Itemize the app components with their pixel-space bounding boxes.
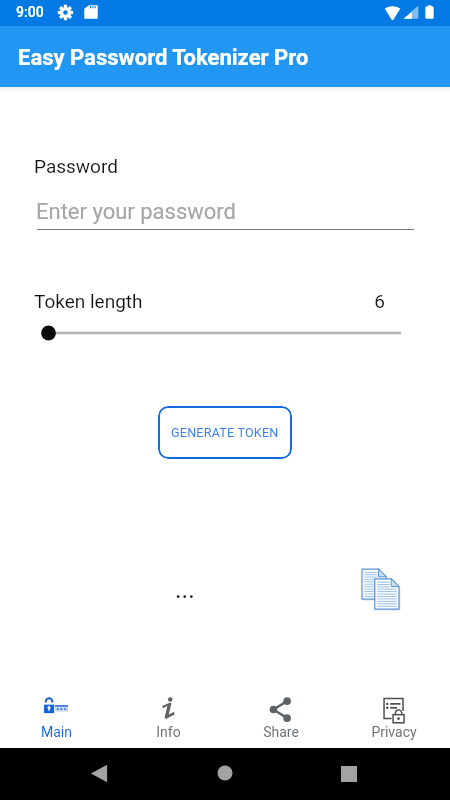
staticText: Privacy: [371, 724, 417, 740]
staticText: Password: [34, 155, 118, 177]
staticText: 6: [374, 290, 385, 312]
other: Back: [90, 764, 108, 783]
staticText: ...: [175, 575, 195, 604]
staticText: Easy Password Tokenizer Pro: [18, 45, 309, 71]
button[interactable]: Info: [112, 680, 224, 748]
button[interactable]: GENERATE TOKEN: [158, 406, 292, 459]
staticText: Token length: [34, 290, 143, 312]
button[interactable]: Copy token: [362, 569, 399, 609]
button[interactable]: Share: [224, 680, 337, 748]
staticText: Enter your password: [36, 199, 237, 225]
other: Home: [217, 765, 233, 781]
staticText: Share: [263, 724, 299, 740]
button[interactable]: Token length slider: [0, 321, 450, 345]
staticText: Info: [156, 724, 181, 740]
button[interactable]: Main: [0, 680, 112, 748]
button[interactable]: Privacy: [337, 680, 450, 748]
staticText: 9:00: [16, 4, 44, 20]
staticText: GENERATE TOKEN: [171, 425, 279, 440]
staticText: Main: [41, 724, 72, 740]
